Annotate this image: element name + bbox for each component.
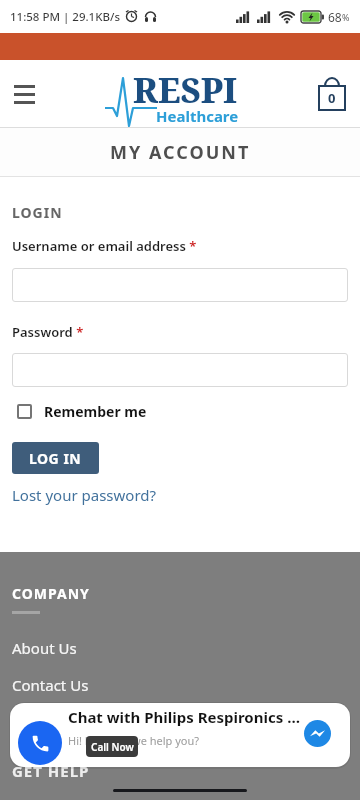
button[interactable]: Remember me [12, 402, 147, 421]
staticText: RESPI [133, 67, 238, 113]
staticText: % [342, 11, 350, 23]
button[interactable] [14, 85, 35, 104]
staticText: 11:58 PM | 29.1KB/s [10, 9, 120, 25]
staticText: Username or email address * [12, 237, 197, 255]
button[interactable]: Call Now [86, 736, 138, 757]
staticText: COMPANY [12, 584, 90, 603]
button[interactable] [12, 353, 348, 387]
button[interactable]: LOG IN [12, 442, 99, 474]
staticText: Call Now [91, 740, 134, 754]
button[interactable]: Chat with Philips Respironics … [10, 703, 350, 767]
button[interactable]: Lost your password? [12, 485, 157, 505]
staticText: Chat with Philips Respironics … [68, 707, 300, 727]
staticText: 0 [328, 89, 336, 107]
staticText: GET HELP [12, 761, 90, 781]
staticText: Healthcare [156, 106, 239, 126]
staticText: Remember me [44, 402, 147, 421]
staticText: LOGIN [12, 203, 63, 222]
button[interactable] [18, 721, 62, 765]
button[interactable]: 0 [317, 77, 347, 111]
staticText: 68 [328, 9, 342, 25]
staticText: Hi! How can we help you? [68, 733, 200, 748]
staticText: LOG IN [29, 449, 82, 468]
staticText: Password * [12, 323, 84, 341]
button[interactable]: About Us [12, 638, 77, 658]
staticText: MY ACCOUNT [110, 140, 251, 165]
button[interactable]: Contact Us [12, 675, 89, 695]
button[interactable] [12, 268, 348, 302]
button[interactable]: RESPI [105, 64, 245, 124]
